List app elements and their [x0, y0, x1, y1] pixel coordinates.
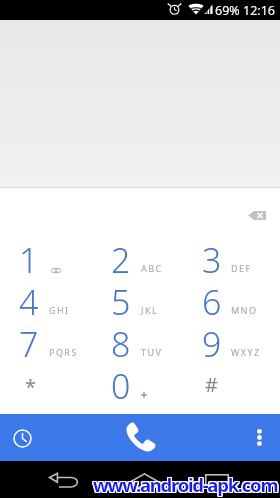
staticText: ABC — [141, 262, 163, 274]
staticText: 2 — [111, 237, 131, 279]
staticText: PQRS — [49, 346, 78, 358]
button[interactable]: 0 — [94, 363, 187, 405]
staticText: DEF — [231, 262, 252, 274]
button[interactable]: 4 — [0, 279, 94, 321]
staticText: www.android-apk.com — [93, 472, 278, 497]
button[interactable]: 5 — [94, 279, 187, 321]
staticText: 69% — [215, 2, 240, 19]
staticText: 7 — [19, 321, 39, 363]
staticText: www.android-apk.com — [93, 471, 278, 496]
staticText: www.android-apk.com — [94, 473, 279, 498]
button[interactable]: 8 — [94, 321, 187, 363]
staticText: # — [205, 371, 218, 398]
staticText: www.android-apk.com — [92, 473, 277, 498]
button[interactable]: 3 — [187, 237, 280, 279]
button[interactable]: 7 — [0, 321, 94, 363]
button[interactable]: * — [0, 363, 94, 405]
staticText: www.android-apk.com — [93, 473, 278, 498]
button[interactable]: 2 — [94, 237, 187, 279]
button[interactable]: More options — [236, 414, 280, 461]
button[interactable]: # — [187, 363, 280, 405]
button[interactable]: 1 — [0, 237, 94, 279]
staticText: MNO — [231, 304, 258, 316]
staticText: www.android-apk.com — [94, 471, 279, 496]
staticText: 1 — [19, 237, 39, 279]
button[interactable]: Home — [117, 461, 169, 498]
button[interactable]: Back — [37, 461, 89, 498]
staticText: 12:16 — [243, 2, 275, 19]
staticText: 6 — [202, 279, 222, 321]
staticText: www.android-apk.com — [94, 472, 279, 497]
staticText: 3 — [202, 237, 222, 279]
button[interactable]: Call history — [0, 414, 44, 461]
staticText: 8 — [111, 321, 131, 363]
staticText: GHI — [49, 304, 70, 316]
button[interactable]: Recents — [192, 461, 244, 498]
staticText: JKL — [141, 304, 159, 316]
button[interactable]: 9 — [187, 321, 280, 363]
staticText: www.android-apk.com — [92, 471, 277, 496]
staticText: WXYZ — [231, 346, 261, 358]
staticText: 5 — [111, 279, 131, 321]
button[interactable]: Delete — [239, 197, 275, 233]
staticText: 4 — [19, 279, 39, 321]
staticText: * — [25, 373, 37, 400]
staticText: TUV — [141, 346, 163, 358]
staticText: www.android-apk.com — [92, 472, 277, 497]
staticText: 0 — [111, 363, 131, 405]
button[interactable]: Call — [44, 414, 236, 461]
button[interactable]: 6 — [187, 279, 280, 321]
staticText: 9 — [202, 321, 222, 363]
